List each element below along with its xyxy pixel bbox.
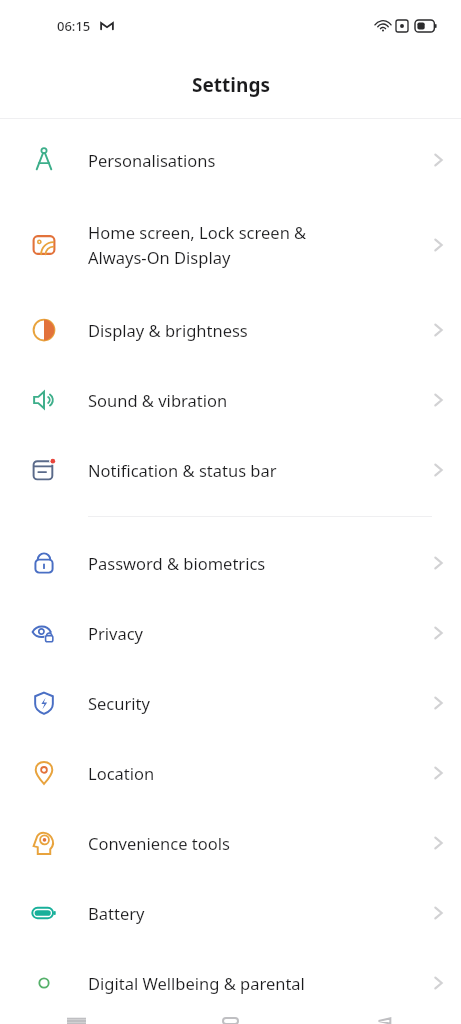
button[interactable]: Home: [153, 1018, 307, 1024]
button[interactable]: Password & biometrics: [0, 528, 461, 598]
button[interactable]: Personalisations: [0, 125, 461, 195]
staticText: Home screen, Lock screen & Always-On Dis…: [88, 221, 415, 269]
staticText: Sound & vibration: [88, 389, 415, 411]
staticText: Display & brightness: [88, 319, 415, 341]
staticText: Convenience tools: [88, 832, 415, 854]
button[interactable]: Convenience tools: [0, 808, 461, 878]
staticText: Settings: [192, 72, 270, 98]
staticText: Battery: [88, 902, 415, 924]
button[interactable]: Display & brightness: [0, 295, 461, 365]
staticText: Security: [88, 692, 415, 714]
staticText: Password & biometrics: [88, 552, 415, 574]
button[interactable]: Sound & vibration: [0, 365, 461, 435]
button[interactable]: Back: [307, 1018, 461, 1024]
staticText: 06:15: [57, 17, 91, 35]
button[interactable]: Battery: [0, 878, 461, 948]
staticText: Location: [88, 762, 415, 784]
staticText: Notification & status bar: [88, 459, 415, 481]
staticText: Personalisations: [88, 149, 415, 171]
button[interactable]: Digital Wellbeing & parental: [0, 948, 461, 1018]
button[interactable]: Notification & status bar: [0, 435, 461, 505]
staticText: Digital Wellbeing & parental: [88, 972, 415, 994]
button[interactable]: Recent apps: [0, 1018, 153, 1024]
button[interactable]: Privacy: [0, 598, 461, 668]
button[interactable]: Home screen, Lock screen & Always-On Dis…: [0, 195, 461, 295]
button[interactable]: Security: [0, 668, 461, 738]
staticText: Privacy: [88, 622, 415, 644]
button[interactable]: Location: [0, 738, 461, 808]
